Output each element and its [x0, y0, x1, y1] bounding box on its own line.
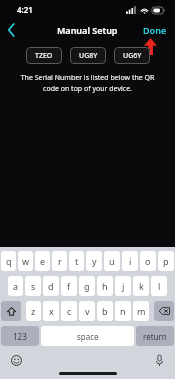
button[interactable]: UG6Y: [114, 47, 150, 64]
button[interactable]: g: [79, 276, 95, 296]
button[interactable]: Done: [143, 24, 167, 36]
staticText: 4:21: [17, 4, 33, 15]
staticText: o: [145, 255, 151, 267]
button[interactable]: c: [61, 301, 77, 321]
staticText: TZEO: [35, 51, 53, 61]
staticText: d: [48, 280, 54, 292]
staticText: UG8Y: [79, 51, 98, 61]
staticText: u: [109, 255, 115, 267]
button[interactable]: p: [158, 251, 174, 271]
button[interactable]: return: [136, 326, 174, 346]
staticText: s: [31, 280, 36, 292]
button[interactable]: f: [61, 276, 77, 296]
button[interactable]: space: [41, 326, 134, 346]
staticText: Manual Setup: [57, 24, 118, 36]
button[interactable]: TZEO: [26, 47, 62, 64]
button[interactable]: x: [43, 301, 59, 321]
staticText: l: [158, 280, 161, 292]
button[interactable]: Shift: [1, 301, 21, 321]
button[interactable]: Dictate: [151, 352, 167, 368]
staticText: z: [31, 305, 36, 317]
button[interactable]: UG8Y: [70, 47, 106, 64]
button[interactable]: y: [86, 251, 102, 271]
button[interactable]: z: [26, 301, 41, 321]
button[interactable]: k: [133, 276, 149, 296]
button[interactable]: w: [18, 251, 33, 271]
staticText: y: [92, 255, 97, 267]
button[interactable]: u: [104, 251, 120, 271]
staticText: UG6Y: [123, 51, 142, 61]
staticText: a: [13, 280, 19, 292]
staticText: n: [120, 305, 126, 317]
button[interactable]: m: [133, 301, 149, 321]
staticText: j: [122, 280, 125, 292]
staticText: r: [58, 255, 62, 267]
button[interactable]: o: [140, 251, 156, 271]
button[interactable]: l: [151, 276, 167, 296]
button[interactable]: b: [97, 301, 113, 321]
staticText: 123: [13, 331, 27, 342]
staticText: e: [40, 255, 46, 267]
button[interactable]: Emoji: [8, 352, 24, 368]
staticText: The Serial Number is listed below the QR…: [14, 73, 161, 93]
button[interactable]: a: [8, 276, 23, 296]
staticText: m: [137, 305, 146, 317]
staticText: i: [129, 255, 132, 267]
staticText: p: [163, 255, 169, 267]
button[interactable]: d: [43, 276, 59, 296]
staticText: Done: [143, 24, 167, 36]
button[interactable]: 123: [1, 326, 39, 346]
staticText: g: [84, 280, 90, 292]
button[interactable]: r: [52, 251, 67, 271]
staticText: x: [49, 305, 54, 317]
button[interactable]: j: [115, 276, 131, 296]
button[interactable]: v: [79, 301, 95, 321]
button[interactable]: n: [115, 301, 131, 321]
staticText: q: [6, 255, 12, 267]
staticText: w: [22, 255, 30, 267]
button[interactable]: Backspace: [154, 301, 174, 321]
staticText: c: [67, 305, 72, 317]
button[interactable]: Back: [0, 19, 22, 40]
staticText: v: [85, 305, 90, 317]
staticText: space: [77, 331, 99, 342]
button[interactable]: q: [1, 251, 16, 271]
button[interactable]: i: [122, 251, 138, 271]
button[interactable]: e: [35, 251, 50, 271]
button[interactable]: t: [69, 251, 84, 271]
staticText: h: [102, 280, 108, 292]
staticText: t: [75, 255, 79, 267]
staticText: k: [139, 280, 144, 292]
staticText: f: [67, 280, 71, 292]
button[interactable]: s: [25, 276, 41, 296]
staticText: return: [143, 331, 167, 342]
staticText: b: [102, 305, 108, 317]
button[interactable]: h: [97, 276, 113, 296]
